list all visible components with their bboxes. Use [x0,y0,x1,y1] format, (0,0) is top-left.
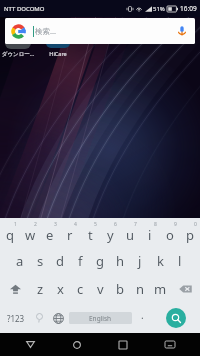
button[interactable]: 3 [40,218,60,247]
staticText: j [138,252,142,270]
button[interactable]: d [50,247,70,275]
button[interactable]: HiCare [46,22,70,48]
button[interactable]: English [69,312,132,324]
button[interactable]: l [170,247,190,275]
staticText: b [116,280,124,298]
staticText: l [178,252,182,270]
staticText: o [166,226,174,244]
button[interactable]: Home [60,333,94,356]
staticText: 0 [194,221,197,228]
button[interactable]: c [70,275,90,303]
staticText: w [25,226,36,244]
button[interactable]: v [90,275,110,303]
staticText: u [126,226,135,244]
staticText: r [67,226,73,244]
button[interactable]: g [90,247,110,275]
staticText: 検索... [35,26,57,36]
button[interactable]: ?123 [0,303,31,333]
staticText: v [97,280,104,298]
staticText: ?123 [7,313,25,324]
staticText: f [78,252,83,270]
staticText: 4 [74,221,77,228]
button[interactable]: b [110,275,130,303]
button[interactable]: Backspace [170,275,200,303]
staticText: i [148,226,152,244]
button[interactable]: 5 [80,218,100,247]
button[interactable]: Search [152,303,200,333]
button[interactable]: j [130,247,150,275]
staticText: 3 [54,221,57,228]
button[interactable]: m [150,275,170,303]
button[interactable]: 8 [140,218,160,247]
staticText: e [46,226,54,244]
button[interactable]: f [70,247,90,275]
button[interactable]: a [10,247,30,275]
staticText: 7 [134,221,137,228]
staticText: s [37,252,44,270]
staticText: 5 [94,221,97,228]
staticText: q [6,226,14,244]
staticText: k [157,252,164,270]
staticText: d [56,252,64,270]
button[interactable]: Emoji [31,303,48,333]
staticText: m [154,280,167,298]
button[interactable]: 1 [0,218,20,247]
button[interactable]: Hide keyboard [153,333,187,356]
staticText: y [107,226,114,244]
staticText: a [16,252,24,270]
staticText: NTT DOCOMO [4,5,45,13]
staticText: ダウンロー... [0,50,36,58]
staticText: p [186,226,194,244]
button[interactable]: 9 [160,218,180,247]
button[interactable]: 7 [120,218,140,247]
staticText: 9 [174,221,177,228]
button[interactable]: 検索... [5,18,195,44]
button[interactable]: Downloads [5,23,31,49]
button[interactable]: 0 [180,218,200,247]
staticText: 6 [114,221,117,228]
staticText: 16:09 [180,4,197,13]
button[interactable]: Recents [106,333,140,356]
staticText: English [89,314,112,323]
staticText: h [116,252,125,270]
staticText: 51% [153,5,165,13]
button[interactable]: h [110,247,130,275]
button[interactable]: 4 [60,218,80,247]
button[interactable]: n [130,275,150,303]
button[interactable]: . [132,303,152,333]
staticText: 8 [154,221,157,228]
other: Voice search [176,25,188,37]
staticText: g [96,252,104,270]
button[interactable]: Shift [0,275,30,303]
button[interactable]: 2 [20,218,40,247]
staticText: HiCare [40,50,76,57]
staticText: n [136,280,145,298]
button[interactable]: z [30,275,50,303]
staticText: 2 [34,221,37,228]
button[interactable]: x [50,275,70,303]
button[interactable]: Change language [48,303,69,333]
staticText: z [37,280,44,298]
staticText: t [88,226,93,244]
staticText: c [77,280,84,298]
staticText: . [141,308,144,322]
staticText: 1 [14,221,17,228]
staticText: x [57,280,64,298]
button[interactable]: Back [13,333,47,356]
button[interactable]: s [30,247,50,275]
button[interactable]: 6 [100,218,120,247]
button[interactable]: k [150,247,170,275]
